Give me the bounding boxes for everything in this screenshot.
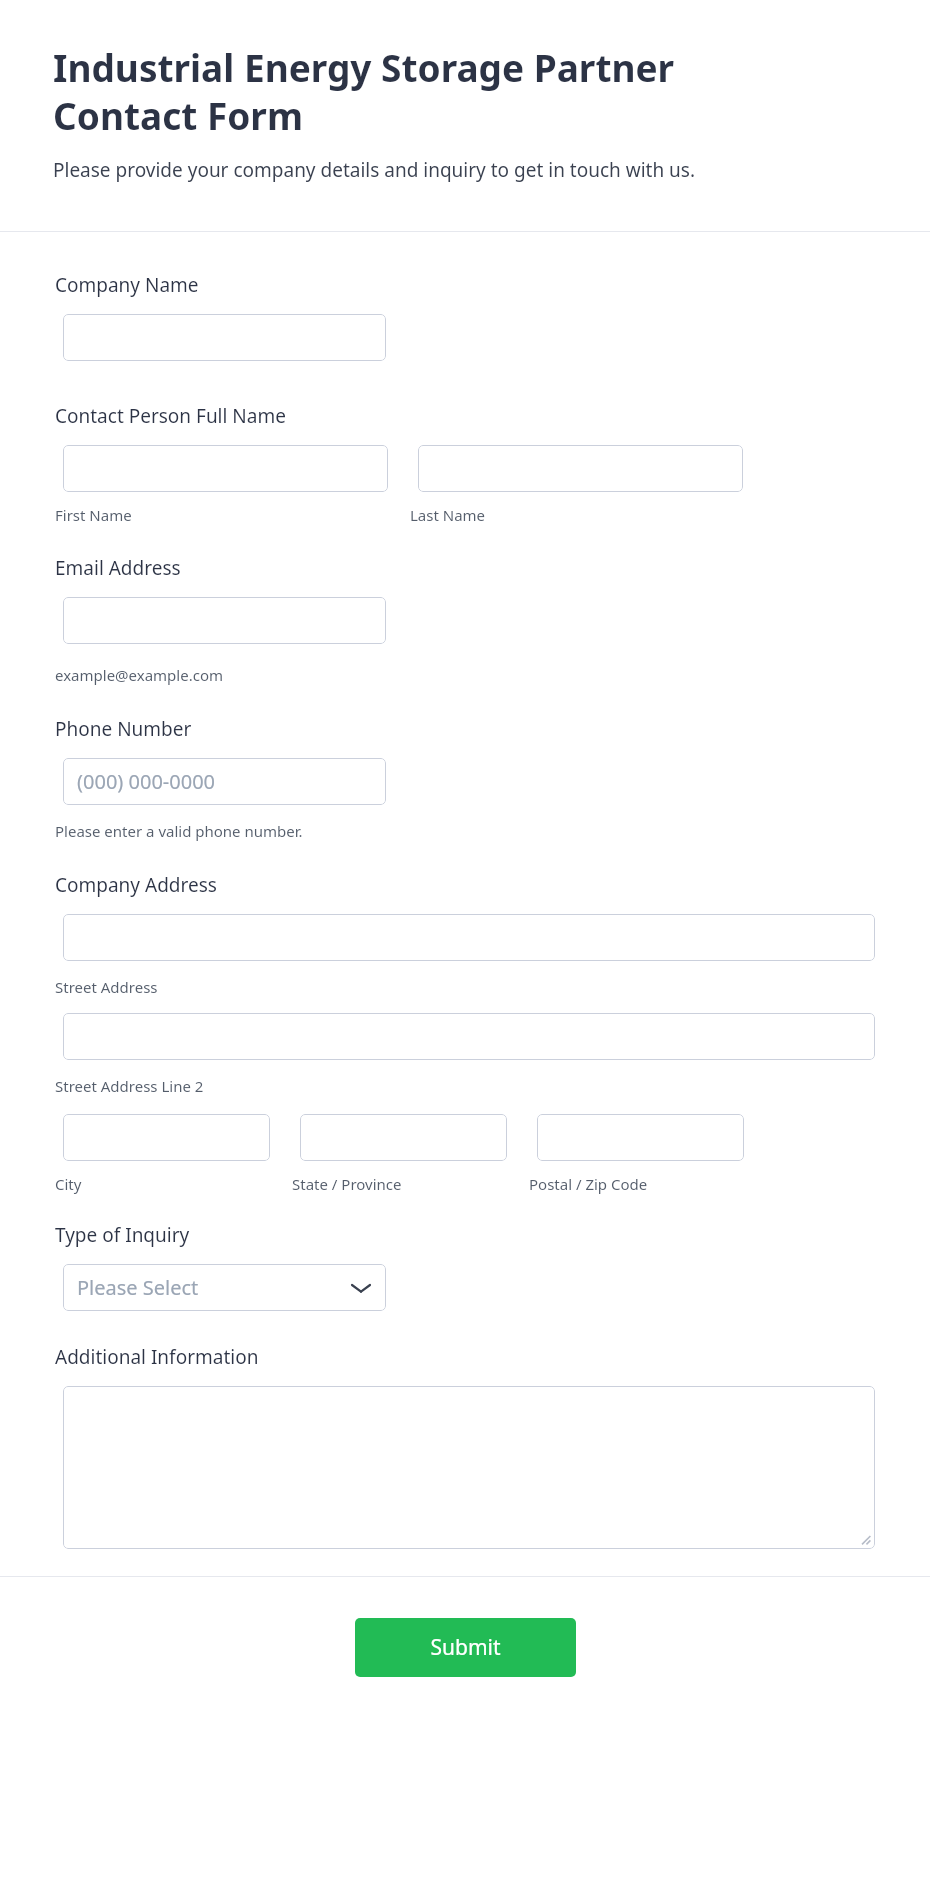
button[interactable]: Please Select bbox=[63, 1264, 386, 1311]
staticText: Submit bbox=[430, 1633, 501, 1662]
staticText: Additional Information bbox=[55, 1344, 259, 1370]
staticText: Contact Person Full Name bbox=[55, 403, 286, 429]
staticText: City bbox=[55, 1174, 82, 1194]
staticText: State / Province bbox=[292, 1174, 402, 1194]
staticText: Type of Inquiry bbox=[55, 1222, 190, 1248]
staticText: Company Address bbox=[55, 872, 217, 898]
staticText: Last Name bbox=[410, 505, 486, 525]
button[interactable] bbox=[63, 597, 386, 644]
button[interactable] bbox=[300, 1114, 507, 1161]
button[interactable] bbox=[418, 445, 743, 492]
button[interactable] bbox=[63, 914, 875, 961]
staticText: Please provide your company details and … bbox=[53, 157, 696, 183]
staticText: example@example.com bbox=[55, 665, 223, 685]
button[interactable] bbox=[537, 1114, 744, 1161]
staticText: Email Address bbox=[55, 555, 181, 581]
button[interactable] bbox=[63, 445, 388, 492]
staticText: Phone Number bbox=[55, 716, 192, 742]
staticText: Company Name bbox=[55, 272, 199, 298]
staticText: First Name bbox=[55, 505, 132, 525]
staticText: Please Select bbox=[77, 1274, 199, 1301]
button[interactable] bbox=[63, 1114, 270, 1161]
button[interactable]: Submit bbox=[355, 1618, 576, 1677]
button[interactable]: (000) 000-0000 bbox=[63, 758, 386, 805]
staticText: Street Address bbox=[55, 977, 158, 997]
staticText: Street Address Line 2 bbox=[55, 1076, 204, 1096]
button[interactable] bbox=[63, 1386, 875, 1549]
button[interactable] bbox=[63, 1013, 875, 1060]
staticText: (000) 000-0000 bbox=[77, 768, 216, 795]
button[interactable] bbox=[63, 314, 386, 361]
staticText: Postal / Zip Code bbox=[529, 1174, 648, 1194]
staticText: Please enter a valid phone number. bbox=[55, 821, 303, 841]
staticText: Industrial Energy Storage Partner Contac… bbox=[53, 42, 740, 141]
